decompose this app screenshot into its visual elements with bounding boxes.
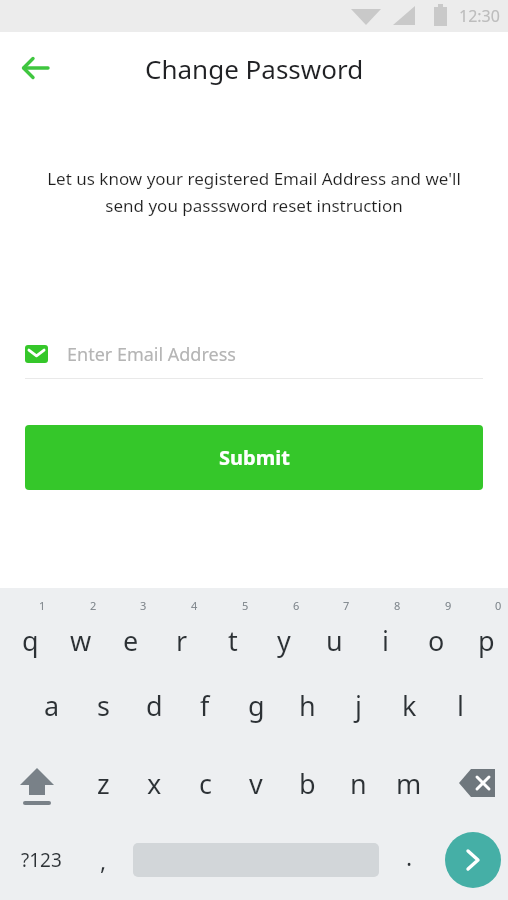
button[interactable]: n <box>334 761 382 805</box>
button[interactable]: a <box>28 683 76 727</box>
button[interactable]: ?123 <box>8 836 74 884</box>
staticText: l <box>457 687 464 724</box>
button[interactable]: d <box>130 683 178 727</box>
staticText: r <box>176 622 188 659</box>
button[interactable]: q <box>6 618 54 662</box>
button[interactable]: p <box>462 618 508 662</box>
staticText: 2 <box>90 598 97 613</box>
staticText: j <box>355 687 362 724</box>
button[interactable]: g <box>232 683 280 727</box>
staticText: x <box>147 765 162 802</box>
staticText: f <box>200 687 210 724</box>
button[interactable]: . <box>385 834 433 878</box>
staticText: Submit <box>219 444 290 471</box>
button[interactable]: h <box>283 683 331 727</box>
button[interactable]: Shift <box>13 759 61 807</box>
staticText: g <box>248 687 265 724</box>
button[interactable]: m <box>385 761 433 805</box>
button[interactable]: Backspace <box>453 759 501 807</box>
button[interactable]: y <box>260 618 308 662</box>
staticText: n <box>350 765 367 802</box>
button[interactable]: i <box>361 618 409 662</box>
button[interactable]: l <box>436 683 484 727</box>
button[interactable]: Submit <box>25 425 483 490</box>
staticText: y <box>277 622 291 659</box>
button[interactable]: t <box>209 618 257 662</box>
staticText: Enter Email Address <box>67 342 236 367</box>
button[interactable]: f <box>181 683 229 727</box>
button[interactable]: b <box>283 761 331 805</box>
button[interactable]: , <box>79 838 127 882</box>
staticText: 12:30 <box>459 5 500 27</box>
staticText: h <box>299 687 316 724</box>
staticText: o <box>428 622 445 659</box>
staticText: 8 <box>394 598 401 613</box>
staticText: v <box>249 765 263 802</box>
staticText: Change Password <box>145 51 364 86</box>
button[interactable]: c <box>181 761 229 805</box>
button[interactable]: s <box>79 683 127 727</box>
staticText: s <box>97 687 110 724</box>
button[interactable]: Enter <box>445 832 501 888</box>
button[interactable]: Back <box>11 44 59 92</box>
button[interactable]: x <box>130 761 178 805</box>
button[interactable]: j <box>334 683 382 727</box>
button[interactable]: o <box>412 618 460 662</box>
staticText: w <box>70 622 92 659</box>
staticText: 6 <box>293 598 300 613</box>
staticText: u <box>326 622 343 659</box>
staticText: t <box>228 622 238 659</box>
staticText: e <box>123 622 139 659</box>
staticText: b <box>299 765 316 802</box>
staticText: . <box>406 841 413 872</box>
staticText: q <box>22 622 39 659</box>
staticText: i <box>382 622 389 659</box>
staticText: 5 <box>242 598 249 613</box>
button[interactable]: z <box>79 761 127 805</box>
staticText: c <box>199 765 212 802</box>
button[interactable]: v <box>232 761 280 805</box>
staticText: z <box>97 765 110 802</box>
staticText: p <box>478 622 495 659</box>
staticText: 0 <box>495 598 502 613</box>
staticText: 7 <box>343 598 350 613</box>
button[interactable]: Enter Email Address <box>25 331 483 377</box>
staticText: 4 <box>191 598 198 613</box>
button[interactable]: u <box>310 618 358 662</box>
button[interactable]: w <box>57 618 105 662</box>
button[interactable]: k <box>385 683 433 727</box>
staticText: 1 <box>39 598 46 613</box>
button[interactable]: r <box>158 618 206 662</box>
staticText: m <box>396 765 422 802</box>
button[interactable]: e <box>107 618 155 662</box>
staticText: ?123 <box>21 847 62 873</box>
staticText: a <box>44 687 60 724</box>
staticText: 3 <box>140 598 147 613</box>
staticText: , <box>100 845 107 876</box>
staticText: Let us know your registered Email Addres… <box>43 167 465 217</box>
staticText: 9 <box>445 598 452 613</box>
staticText: d <box>146 687 163 724</box>
staticText: k <box>402 687 417 724</box>
